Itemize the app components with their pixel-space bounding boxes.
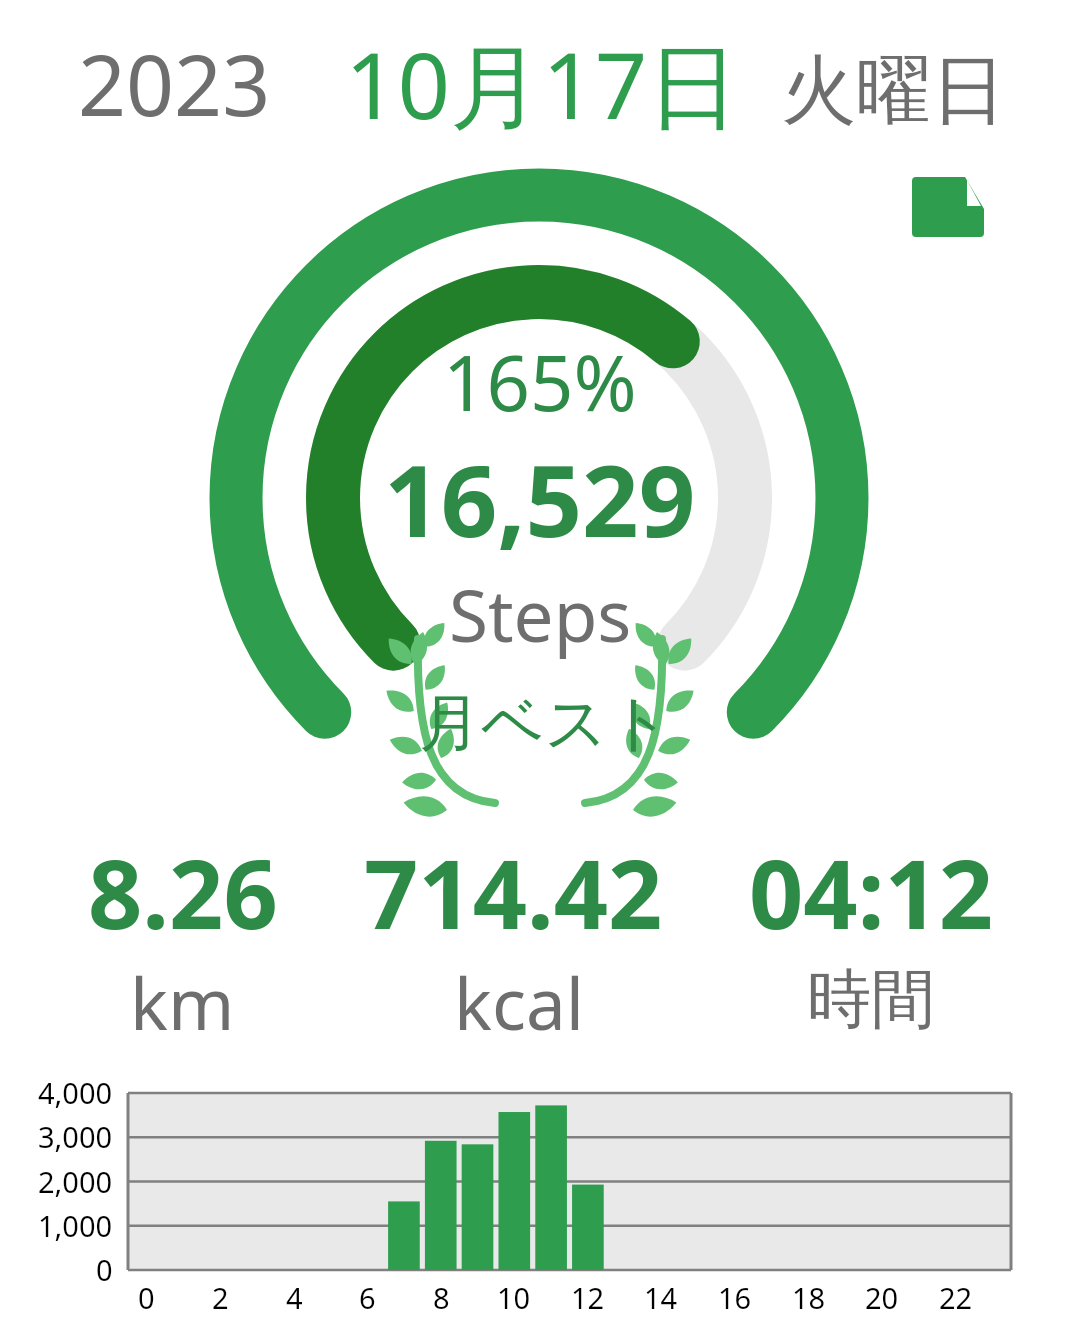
button[interactable]: Memo bbox=[908, 173, 988, 241]
staticText: 165% bbox=[443, 330, 637, 434]
staticText: 714.42 bbox=[364, 827, 663, 956]
staticText: 8.26 bbox=[88, 827, 278, 956]
staticText: 火曜日 bbox=[781, 44, 1006, 138]
staticText: 10月17日 bbox=[345, 21, 740, 147]
button[interactable]: 04:12 bbox=[671, 827, 1071, 1037]
staticText: 2023 bbox=[78, 26, 271, 140]
staticText: Steps bbox=[449, 566, 632, 663]
staticText: 20 bbox=[865, 1278, 899, 1317]
staticText: 時間 bbox=[807, 959, 935, 1040]
staticText: 0 bbox=[138, 1278, 155, 1317]
staticText: 2,000 bbox=[38, 1162, 113, 1201]
staticText: 2 bbox=[212, 1278, 229, 1317]
button[interactable]: 8.26 bbox=[0, 827, 383, 1037]
staticText: 1,000 bbox=[38, 1206, 113, 1245]
staticText: 22 bbox=[939, 1278, 973, 1317]
staticText: km bbox=[130, 954, 235, 1051]
staticText: 18 bbox=[792, 1278, 826, 1317]
staticText: 月ベスト bbox=[419, 684, 672, 762]
staticText: 6 bbox=[359, 1278, 376, 1317]
staticText: 12 bbox=[571, 1278, 605, 1317]
staticText: 4,000 bbox=[38, 1073, 113, 1112]
staticText: 14 bbox=[644, 1278, 678, 1317]
staticText: 4 bbox=[286, 1278, 303, 1317]
staticText: 16 bbox=[718, 1278, 752, 1317]
staticText: 0 bbox=[96, 1250, 113, 1289]
staticText: 8 bbox=[433, 1278, 450, 1317]
staticText: kcal bbox=[454, 954, 585, 1051]
staticText: 10 bbox=[497, 1278, 531, 1317]
button[interactable]: 714.42 bbox=[313, 827, 713, 1037]
staticText: 3,000 bbox=[38, 1117, 113, 1156]
staticText: 16,529 bbox=[384, 431, 696, 566]
staticText: 04:12 bbox=[749, 827, 994, 956]
